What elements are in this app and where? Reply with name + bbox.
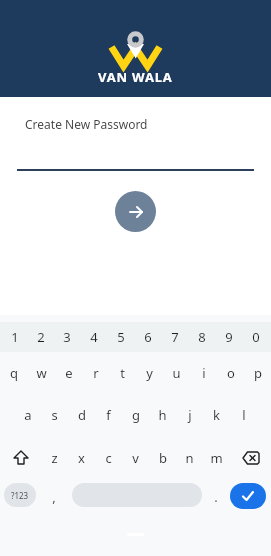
button[interactable]: a	[14, 394, 41, 436]
staticText: 4	[90, 328, 98, 346]
button[interactable]: v	[122, 436, 149, 480]
staticText: q	[10, 364, 18, 382]
staticText: z	[51, 449, 58, 467]
button[interactable]	[0, 436, 41, 480]
button[interactable]: 3	[54, 322, 80, 352]
staticText: s	[51, 406, 58, 424]
staticText: .	[214, 488, 218, 506]
staticText: 1	[11, 328, 19, 346]
button[interactable]: k	[203, 394, 230, 436]
button[interactable]: f	[95, 394, 122, 436]
button[interactable]: n	[176, 436, 203, 480]
button[interactable]	[72, 483, 202, 507]
button[interactable]: w	[28, 352, 55, 394]
button[interactable]: m	[203, 436, 230, 480]
staticText: r	[93, 364, 99, 382]
staticText: 8	[198, 328, 206, 346]
button[interactable]: ?123	[4, 483, 36, 507]
button[interactable]: 0	[242, 322, 269, 352]
staticText: w	[36, 364, 47, 382]
button[interactable]: 7	[161, 322, 188, 352]
staticText: ?123	[11, 490, 29, 501]
staticText: v	[132, 449, 139, 467]
staticText: i	[202, 364, 206, 382]
button[interactable]: g	[122, 394, 149, 436]
staticText: 5	[117, 328, 125, 346]
button[interactable]: 9	[215, 322, 242, 352]
button[interactable]: q	[0, 352, 28, 394]
staticText: e	[65, 364, 73, 382]
button[interactable]	[115, 191, 156, 232]
button[interactable]: ,	[44, 480, 64, 514]
button[interactable]: l	[230, 394, 257, 436]
button[interactable]: 1	[2, 322, 28, 352]
button[interactable]: 4	[80, 322, 107, 352]
staticText: 3	[63, 328, 71, 346]
button[interactable]: r	[82, 352, 109, 394]
staticText: x	[78, 449, 85, 467]
staticText: l	[242, 406, 246, 424]
button[interactable]: t	[109, 352, 136, 394]
button[interactable]: h	[149, 394, 176, 436]
button[interactable]	[230, 436, 271, 480]
staticText: t	[120, 364, 125, 382]
button[interactable]: 5	[107, 322, 134, 352]
staticText: 6	[144, 328, 152, 346]
staticText: VAN WALA	[98, 68, 173, 86]
staticText: 0	[252, 328, 260, 346]
staticText: k	[213, 406, 220, 424]
staticText: o	[227, 364, 235, 382]
button[interactable]: 2	[28, 322, 54, 352]
staticText: 2	[37, 328, 45, 346]
button[interactable]: .	[206, 480, 226, 514]
staticText: n	[185, 449, 194, 467]
button[interactable]: u	[163, 352, 190, 394]
staticText: b	[159, 449, 167, 467]
button[interactable]	[230, 483, 266, 509]
button[interactable]: 6	[134, 322, 161, 352]
staticText: c	[105, 449, 112, 467]
button[interactable]: y	[136, 352, 163, 394]
button[interactable]: x	[68, 436, 95, 480]
staticText: f	[106, 406, 111, 424]
button[interactable]: z	[41, 436, 68, 480]
staticText: 9	[225, 328, 233, 346]
staticText: ,	[52, 488, 56, 506]
staticText: u	[172, 364, 181, 382]
button[interactable]: d	[68, 394, 95, 436]
staticText: h	[158, 406, 167, 424]
button[interactable]: i	[190, 352, 217, 394]
staticText: a	[24, 406, 32, 424]
staticText: 7	[171, 328, 179, 346]
button[interactable]: j	[176, 394, 203, 436]
button[interactable]: p	[244, 352, 271, 394]
staticText: m	[210, 449, 223, 467]
staticText: j	[188, 406, 192, 424]
button[interactable]: e	[55, 352, 82, 394]
staticText: d	[78, 406, 86, 424]
button[interactable]: s	[41, 394, 68, 436]
button[interactable]: c	[95, 436, 122, 480]
staticText: y	[146, 364, 153, 382]
staticText: p	[254, 364, 262, 382]
button[interactable]: o	[217, 352, 244, 394]
staticText: Create New Password	[25, 116, 148, 132]
button[interactable]: b	[149, 436, 176, 480]
button[interactable]: 8	[188, 322, 215, 352]
staticText: g	[132, 406, 140, 424]
